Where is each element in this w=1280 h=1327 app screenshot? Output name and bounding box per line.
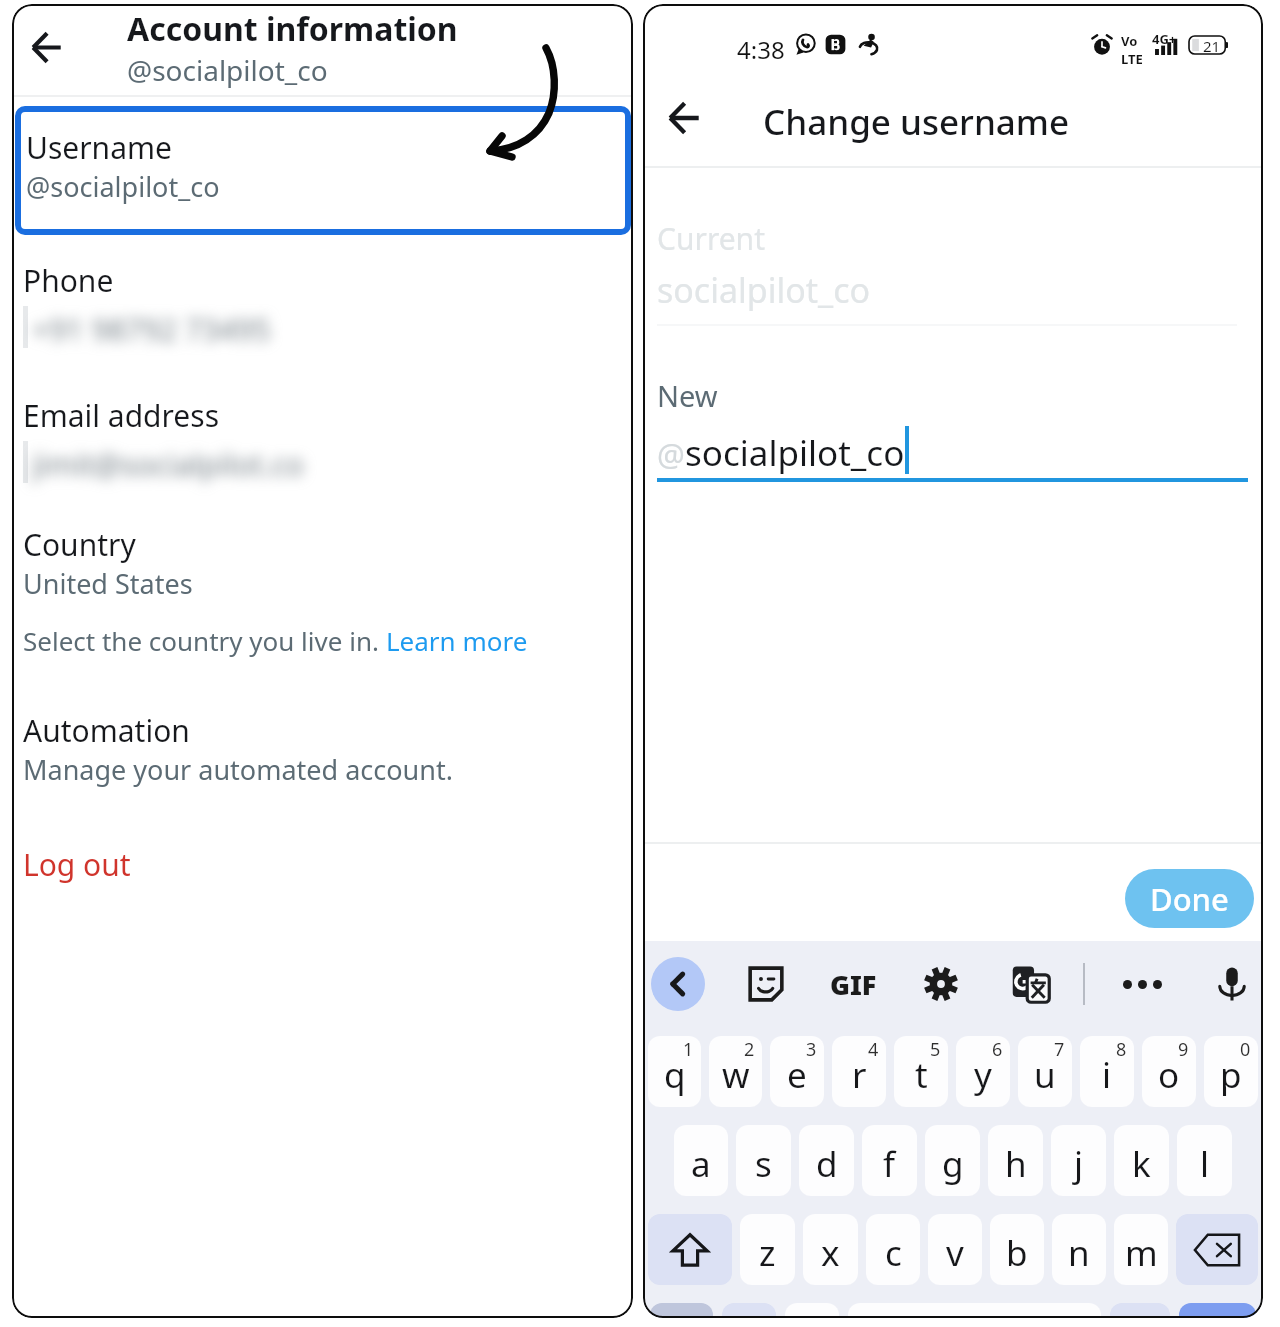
- staticText: j: [1074, 1140, 1084, 1188]
- staticText: jimit@socialpilot.co: [32, 444, 304, 485]
- button[interactable]: n: [1052, 1214, 1106, 1285]
- button[interactable]: [848, 1303, 1101, 1318]
- button[interactable]: f: [862, 1125, 917, 1196]
- button[interactable]: .: [1110, 1303, 1170, 1318]
- button[interactable]: r: [832, 1036, 886, 1107]
- staticText: @: [657, 433, 685, 475]
- button[interactable]: v: [928, 1214, 982, 1285]
- button[interactable]: b: [990, 1214, 1044, 1285]
- staticText: 4G+: [1152, 30, 1177, 48]
- staticText: Vo: [1121, 32, 1138, 50]
- staticText: socialpilot_co: [685, 429, 905, 477]
- button[interactable]: More options: [1119, 961, 1165, 1007]
- button[interactable]: Settings: [918, 961, 964, 1007]
- button[interactable]: Log out: [23, 844, 203, 888]
- staticText: w: [722, 1051, 750, 1099]
- button[interactable]: Translate: [1008, 961, 1054, 1007]
- button[interactable]: Back: [654, 88, 714, 148]
- staticText: 21: [1203, 36, 1221, 54]
- button[interactable]: Email address: [23, 395, 543, 486]
- staticText: Username: [26, 127, 172, 168]
- button[interactable]: Change username: [763, 98, 1070, 146]
- button[interactable]: Username: [15, 106, 631, 235]
- staticText: y: [974, 1051, 992, 1099]
- button[interactable]: j: [1051, 1125, 1106, 1196]
- button[interactable]: e: [770, 1036, 824, 1107]
- staticText: z: [759, 1229, 776, 1277]
- button[interactable]: h: [988, 1125, 1043, 1196]
- staticText: Manage your automated account.: [23, 751, 453, 788]
- staticText: 3: [806, 1037, 817, 1062]
- staticText: Log out: [23, 844, 131, 885]
- staticText: o: [1158, 1051, 1180, 1099]
- button[interactable]: q: [648, 1036, 701, 1107]
- button[interactable]: w: [709, 1036, 762, 1107]
- staticText: n: [1068, 1229, 1090, 1277]
- button[interactable]: Automation: [23, 710, 583, 788]
- button[interactable]: ,: [785, 1303, 839, 1318]
- button[interactable]: Backspace: [1176, 1214, 1258, 1285]
- staticText: u: [1034, 1051, 1056, 1099]
- staticText: r: [852, 1051, 867, 1099]
- staticText: 9: [1178, 1037, 1189, 1062]
- button[interactable]: u: [1018, 1036, 1072, 1107]
- button[interactable]: y: [956, 1036, 1010, 1107]
- staticText: Email address: [23, 395, 220, 436]
- staticText: @socialpilot_co: [26, 168, 220, 205]
- button[interactable]: Shift: [648, 1214, 732, 1285]
- button[interactable]: t: [894, 1036, 948, 1107]
- staticText: s: [755, 1140, 772, 1188]
- staticText: f: [883, 1140, 896, 1188]
- button[interactable]: Account information: [127, 7, 458, 89]
- staticText: 4: [868, 1037, 879, 1062]
- button[interactable]: Learn more: [386, 623, 528, 658]
- staticText: New: [657, 376, 718, 415]
- staticText: x: [821, 1229, 840, 1277]
- staticText: q: [664, 1051, 686, 1099]
- staticText: Automation: [23, 710, 190, 751]
- staticText: 4:38: [737, 33, 785, 66]
- staticText: k: [1132, 1140, 1151, 1188]
- staticText: t: [915, 1051, 928, 1099]
- button[interactable]: x: [803, 1214, 858, 1285]
- button[interactable]: i: [1080, 1036, 1134, 1107]
- staticText: 2: [744, 1037, 755, 1062]
- staticText: United States: [23, 565, 193, 602]
- staticText: Learn more: [386, 623, 528, 658]
- button[interactable]: c: [866, 1214, 920, 1285]
- staticText: 1: [683, 1037, 694, 1062]
- button[interactable]: k: [1114, 1125, 1169, 1196]
- staticText: Phone: [23, 260, 114, 301]
- staticText: l: [1200, 1140, 1210, 1188]
- button[interactable]: g: [925, 1125, 980, 1196]
- button[interactable]: Phone: [23, 260, 503, 351]
- button[interactable]: a: [674, 1125, 728, 1196]
- button[interactable]: Stickers: [743, 961, 789, 1007]
- staticText: GIF: [830, 966, 877, 1003]
- button[interactable]: z: [740, 1214, 795, 1285]
- button[interactable]: Voice input: [1209, 961, 1255, 1007]
- button[interactable]: s: [736, 1125, 791, 1196]
- button[interactable]: [722, 1303, 776, 1318]
- button[interactable]: l: [1177, 1125, 1232, 1196]
- staticText: p: [1220, 1051, 1242, 1099]
- staticText: 0: [1240, 1037, 1251, 1062]
- staticText: 8: [1116, 1037, 1127, 1062]
- button[interactable]: [1179, 1303, 1256, 1318]
- button[interactable]: o: [1142, 1036, 1196, 1107]
- staticText: Change username: [763, 98, 1070, 146]
- button[interactable]: ?123: [650, 1303, 713, 1318]
- button[interactable]: m: [1114, 1214, 1168, 1285]
- staticText: h: [1005, 1140, 1027, 1188]
- button[interactable]: Done: [1125, 869, 1254, 928]
- staticText: @socialpilot_co: [127, 51, 328, 89]
- staticText: a: [691, 1140, 711, 1188]
- button[interactable]: Country: [23, 524, 623, 658]
- button[interactable]: Close keyboard: [651, 957, 705, 1011]
- button[interactable]: p: [1204, 1036, 1258, 1107]
- staticText: e: [787, 1051, 807, 1099]
- button[interactable]: GIF: [823, 961, 883, 1007]
- staticText: m: [1125, 1229, 1158, 1277]
- button[interactable]: Back: [16, 17, 76, 77]
- button[interactable]: d: [799, 1125, 854, 1196]
